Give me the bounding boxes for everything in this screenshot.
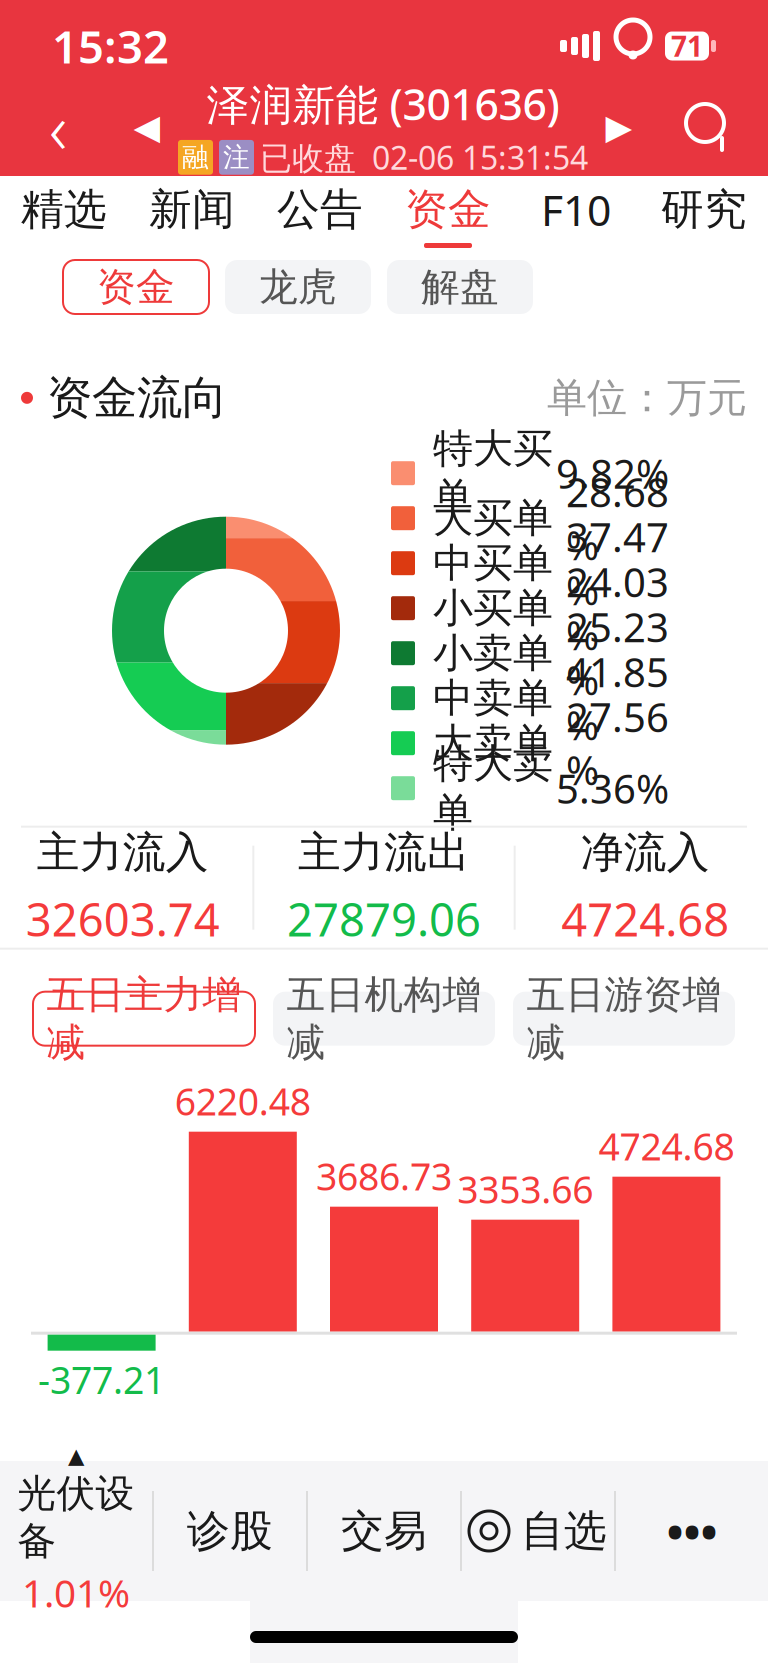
button[interactable]: 五日游资增减 xyxy=(513,992,735,1046)
staticText: 41.85% xyxy=(566,645,669,751)
button[interactable]: 自选 xyxy=(462,1461,614,1601)
staticText: 71 xyxy=(671,27,703,65)
staticText: 交易 xyxy=(341,1505,427,1557)
staticText: ▶ xyxy=(605,107,632,147)
staticText: 27.56% xyxy=(566,690,669,796)
staticText: 五日机构增减 xyxy=(286,971,481,1066)
staticText: 精选 xyxy=(21,183,107,236)
staticText: 特大卖单 xyxy=(433,739,553,837)
staticText: 大卖单 xyxy=(433,719,553,768)
button[interactable]: 更多 xyxy=(616,1461,768,1601)
staticText: 融 xyxy=(182,141,209,174)
staticText: 自选 xyxy=(521,1505,607,1557)
staticText: ▲ xyxy=(68,1444,84,1468)
staticText: 3686.73 xyxy=(316,1151,452,1201)
staticText: 中卖单 xyxy=(433,674,553,723)
staticText: 小买单 xyxy=(433,584,553,633)
staticText: 6220.48 xyxy=(175,1076,311,1126)
staticText: 主力流入 xyxy=(37,826,209,879)
staticText: 中买单 xyxy=(433,539,553,588)
button[interactable]: 精选 xyxy=(0,176,128,254)
staticText: 公告 xyxy=(277,183,363,236)
staticText: 注 xyxy=(223,141,250,174)
staticText: 5.36% xyxy=(556,762,669,815)
button[interactable]: 五日主力增减 xyxy=(33,992,255,1046)
button[interactable]: F10 xyxy=(512,176,640,254)
staticText: 15:32 xyxy=(52,16,169,76)
button[interactable]: 公告 xyxy=(256,176,384,254)
staticText: 大买单 xyxy=(433,494,553,543)
staticText: 五日游资增减 xyxy=(526,971,721,1066)
button[interactable]: 五日机构增减 xyxy=(273,992,495,1046)
staticText: 9.82% xyxy=(556,447,669,500)
button[interactable]: 搜索 xyxy=(668,87,750,167)
staticText: 3353.66 xyxy=(457,1164,593,1214)
staticText: 特大买单 xyxy=(433,424,553,522)
button[interactable]: ▲ xyxy=(0,1461,152,1601)
staticText: 27879.06 xyxy=(287,889,481,949)
staticText: 资金 xyxy=(405,183,491,236)
staticText: F10 xyxy=(541,181,611,238)
staticText: 4724.68 xyxy=(561,889,729,949)
staticText: 单位：万元 xyxy=(547,373,747,422)
staticText: 解盘 xyxy=(421,263,499,311)
staticText: ◀ xyxy=(133,107,160,147)
button[interactable]: 下一只股票 xyxy=(596,92,642,162)
button[interactable]: 上一只股票 xyxy=(124,92,170,162)
staticText: 泽润新能 (301636) xyxy=(206,75,559,132)
staticText: 研究 xyxy=(661,183,747,236)
button[interactable]: 交易 xyxy=(308,1461,460,1601)
button[interactable]: 解盘 xyxy=(387,260,533,314)
staticText: 小卖单 xyxy=(433,629,553,678)
staticText: 4724.68 xyxy=(598,1121,734,1171)
staticText: ••• xyxy=(666,1501,717,1561)
staticText: 资金流向 xyxy=(47,370,227,426)
staticText: 24.03% xyxy=(566,555,669,661)
staticText: 资金 xyxy=(97,263,175,311)
staticText: 1.01% xyxy=(22,1567,130,1618)
staticText: 诊股 xyxy=(187,1505,273,1557)
staticText: 光伏设备 xyxy=(17,1470,134,1565)
staticText: 净流入 xyxy=(581,826,710,879)
staticText: 已收盘 02-06 15:31:54 xyxy=(260,136,588,179)
staticText: 新闻 xyxy=(149,183,235,236)
staticText: -377.21 xyxy=(38,1355,165,1404)
staticText: 37.47% xyxy=(566,510,669,616)
button[interactable]: 返回 xyxy=(18,87,98,167)
button[interactable]: 诊股 xyxy=(154,1461,306,1601)
button[interactable]: 资金 xyxy=(384,176,512,254)
button[interactable]: 龙虎 xyxy=(225,260,371,314)
staticText: 28.68% xyxy=(566,465,669,571)
button[interactable]: 新闻 xyxy=(128,176,256,254)
staticText: ‹ xyxy=(49,81,67,173)
staticText: 主力流出 xyxy=(298,826,470,879)
button[interactable]: 资金 xyxy=(63,260,209,314)
staticText: 龙虎 xyxy=(259,263,337,311)
button[interactable]: 研究 xyxy=(640,176,768,254)
staticText: 五日主力增减 xyxy=(46,971,241,1066)
staticText: 25.23% xyxy=(566,600,669,706)
staticText: 32603.74 xyxy=(26,889,220,949)
